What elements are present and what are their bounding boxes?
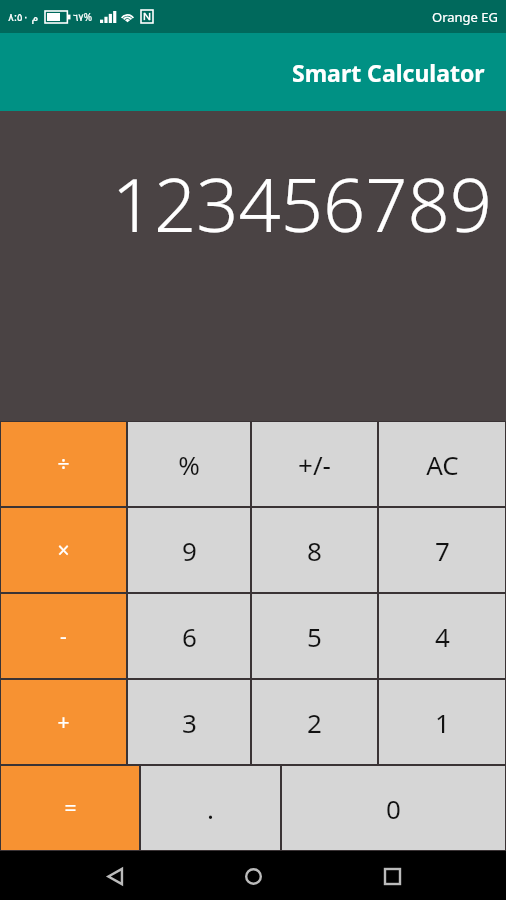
button[interactable]: + <box>1 680 126 764</box>
button[interactable]: 6 <box>128 594 250 678</box>
button[interactable]: +/- <box>252 422 377 506</box>
button[interactable]: Home <box>229 852 277 900</box>
button[interactable]: . <box>141 766 280 850</box>
button[interactable]: = <box>1 766 139 850</box>
staticText: 9 <box>182 533 197 568</box>
staticText: × <box>57 536 70 565</box>
button[interactable]: 9 <box>128 508 250 592</box>
staticText: م ٨:٥٠ <box>8 9 39 24</box>
button[interactable]: % <box>128 422 250 506</box>
staticText: 3 <box>182 705 197 740</box>
button[interactable]: 2 <box>252 680 377 764</box>
staticText: . <box>207 791 214 826</box>
staticText: AC <box>426 447 459 482</box>
staticText: 4 <box>435 619 450 654</box>
button[interactable]: AC <box>379 422 505 506</box>
staticText: ÷ <box>57 450 70 479</box>
button[interactable]: - <box>1 594 126 678</box>
button[interactable]: 3 <box>128 680 250 764</box>
staticText: +/- <box>298 447 331 482</box>
button[interactable]: 4 <box>379 594 505 678</box>
button[interactable]: 7 <box>379 508 505 592</box>
staticText: 5 <box>307 619 322 654</box>
staticText: + <box>57 708 70 737</box>
button[interactable]: Recent apps <box>368 852 416 900</box>
staticText: Orange EG <box>432 8 498 26</box>
button[interactable]: 5 <box>252 594 377 678</box>
staticText: 7 <box>435 533 450 568</box>
button[interactable]: 1 <box>379 680 505 764</box>
button[interactable]: 0 <box>282 766 505 850</box>
staticText: % <box>178 447 200 482</box>
button[interactable]: Back <box>91 852 139 900</box>
staticText: 123456789 <box>111 153 492 254</box>
staticText: - <box>60 622 67 651</box>
staticText: 6 <box>182 619 197 654</box>
staticText: ٦٧% <box>73 10 93 24</box>
staticText: Smart Calculator <box>292 57 485 88</box>
staticText: 8 <box>307 533 322 568</box>
button[interactable]: 8 <box>252 508 377 592</box>
staticText: 1 <box>435 705 450 740</box>
button[interactable]: × <box>1 508 126 592</box>
button[interactable]: ÷ <box>1 422 126 506</box>
staticText: 2 <box>307 705 322 740</box>
staticText: = <box>64 794 77 823</box>
staticText: 0 <box>386 791 401 826</box>
